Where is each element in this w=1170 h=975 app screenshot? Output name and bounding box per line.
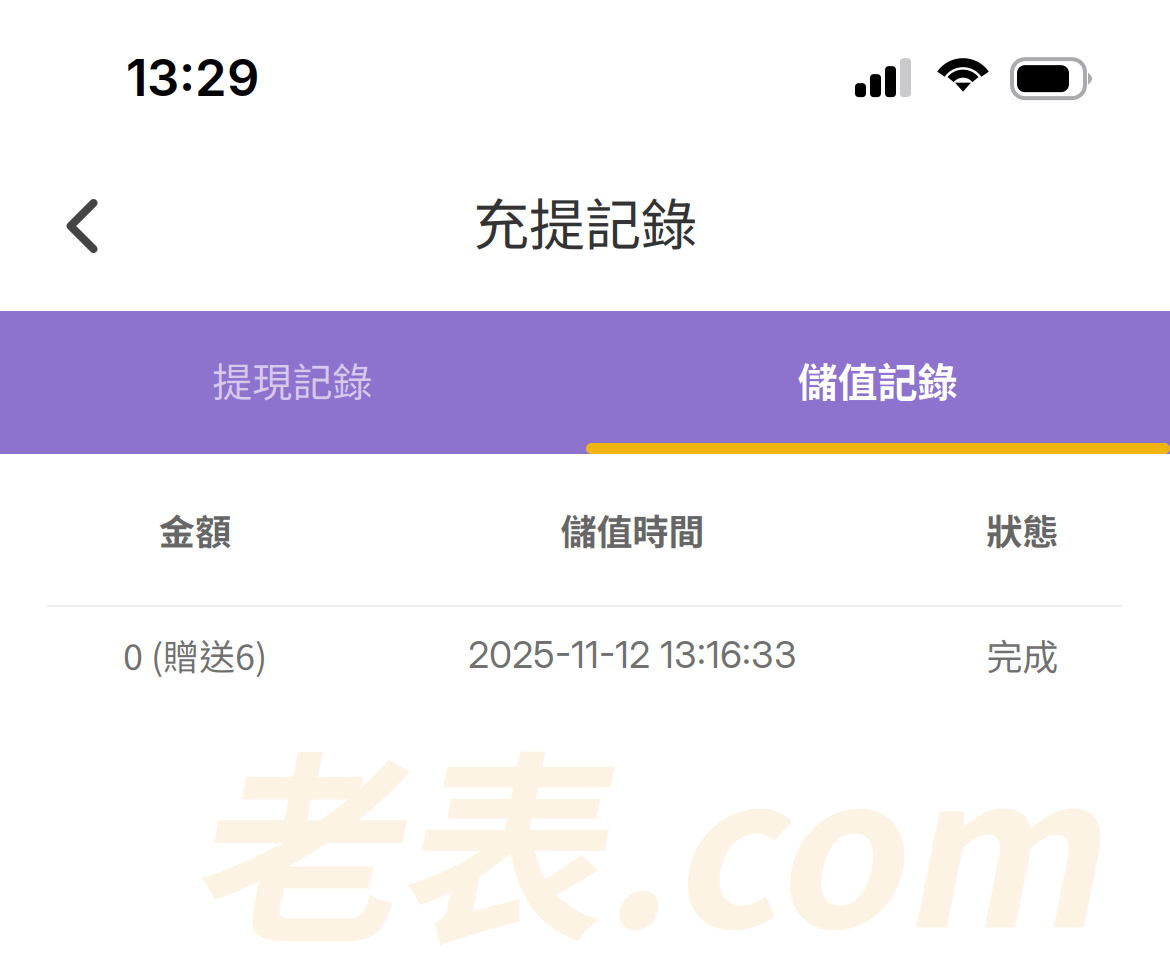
button[interactable]: Back [34, 173, 130, 269]
staticText: 13:29 [126, 47, 259, 108]
button[interactable]: 儲值記錄 [585, 311, 1170, 454]
staticText: 老表.com [188, 688, 1099, 975]
staticText: 2025-11-12 13:16:33 [468, 632, 797, 677]
staticText: 儲值記錄 [797, 350, 957, 408]
staticText: 提現記錄 [212, 350, 372, 408]
button[interactable]: 提現記錄 [0, 311, 585, 454]
button[interactable]: 0 (贈送6) [0, 607, 1170, 702]
staticText: 儲值時間 [560, 503, 704, 555]
staticText: 充提記錄 [473, 180, 697, 262]
staticText: 狀態 [986, 503, 1058, 555]
staticText: 完成 [986, 628, 1058, 680]
staticText: 0 (贈送6) [123, 628, 267, 680]
staticText: 金額 [159, 503, 231, 555]
